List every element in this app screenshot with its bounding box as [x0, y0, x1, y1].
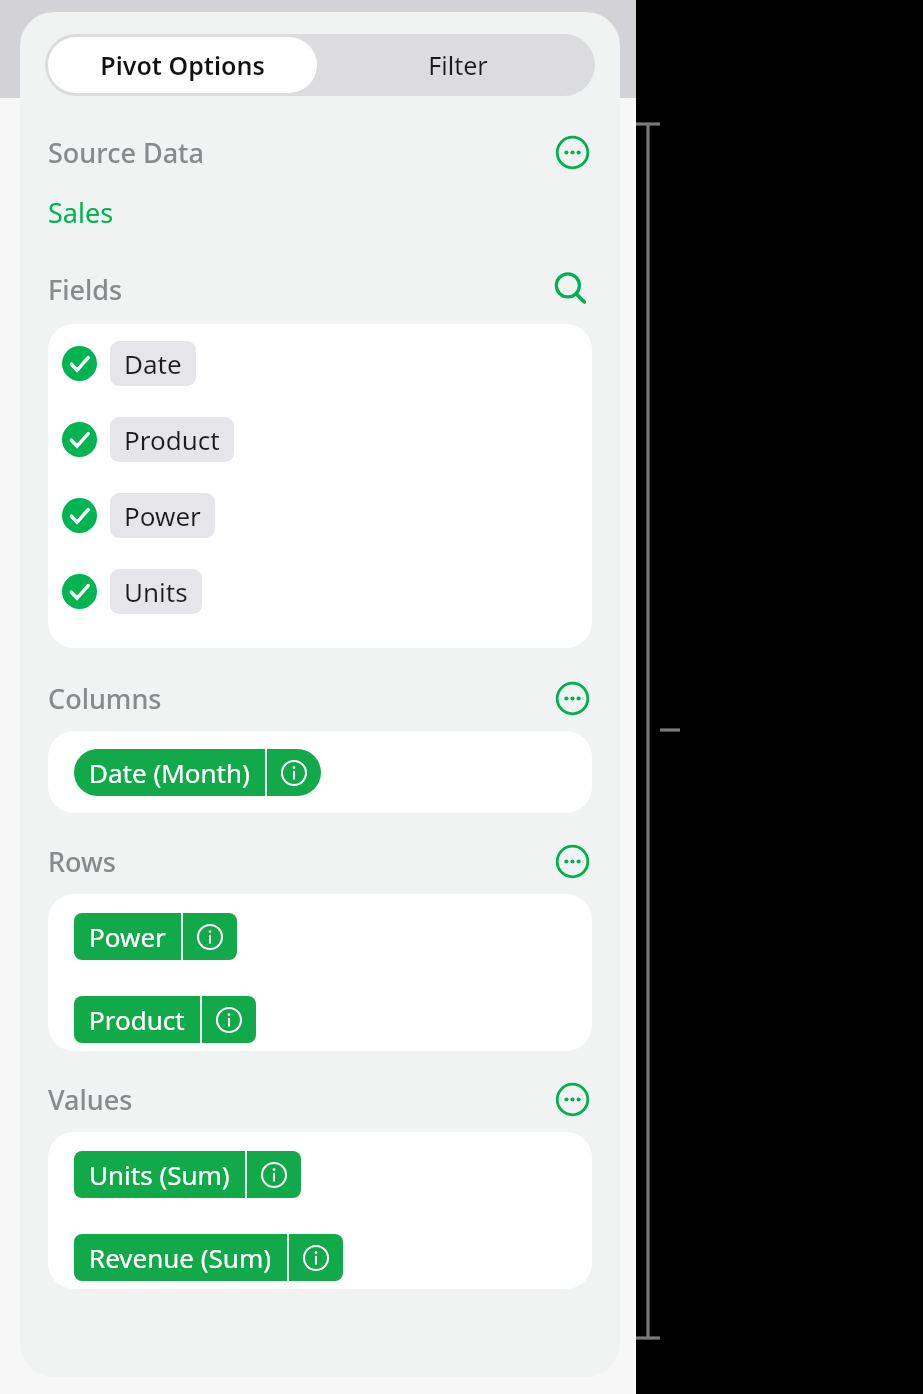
staticText: Power	[89, 919, 166, 954]
staticText: Product	[124, 422, 220, 457]
button[interactable]: Values options	[552, 1079, 592, 1119]
staticText: Sales	[48, 194, 114, 231]
staticText: Source Data	[48, 134, 204, 171]
staticText: Revenue (Sum)	[89, 1240, 272, 1275]
staticText: Date (Month)	[89, 755, 250, 790]
button[interactable]: Power	[62, 493, 215, 538]
button[interactable]: Date (Month)	[74, 749, 321, 796]
button[interactable]: Pivot Options	[48, 37, 317, 93]
button[interactable]: Columns options	[552, 678, 592, 718]
staticText: Pivot Options	[100, 48, 265, 82]
button[interactable]: Units (Sum)	[74, 1151, 301, 1198]
button[interactable]: Sales	[48, 194, 114, 231]
staticText: Product	[89, 1002, 185, 1037]
staticText: Fields	[48, 271, 123, 308]
staticText: Filter	[428, 48, 488, 82]
button[interactable]: Power	[74, 913, 237, 960]
button[interactable]: Search	[548, 267, 592, 311]
staticText: Rows	[48, 843, 116, 880]
button[interactable]: Source data options	[552, 132, 592, 172]
staticText: Units (Sum)	[89, 1157, 230, 1192]
button[interactable]: Product	[74, 996, 256, 1043]
staticText: Values	[48, 1081, 133, 1118]
button[interactable]: Filter	[320, 34, 595, 96]
button[interactable]: Revenue (Sum)	[74, 1234, 343, 1281]
button[interactable]: Date	[62, 341, 196, 386]
staticText: Units	[124, 574, 188, 609]
button[interactable]: Rows options	[552, 841, 592, 881]
button[interactable]: Units	[62, 569, 202, 614]
staticText: Power	[124, 498, 201, 533]
staticText: Columns	[48, 680, 162, 717]
button[interactable]: Product	[62, 417, 234, 462]
staticText: Date	[124, 346, 182, 381]
